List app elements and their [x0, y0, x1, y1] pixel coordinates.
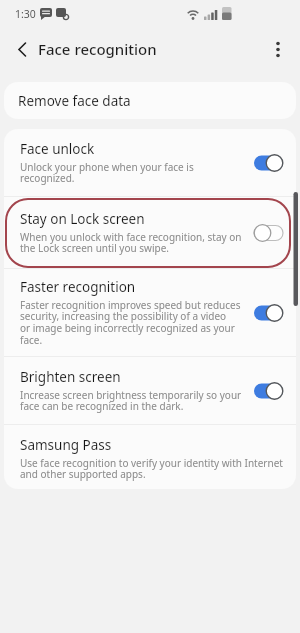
staticText: Unlock your phone when your face is reco…	[20, 160, 194, 185]
button[interactable]: Brighten screen	[4, 357, 296, 424]
staticText: Use face recognition to verify your iden…	[20, 456, 283, 481]
button[interactable]: Faster recognition	[4, 269, 296, 356]
staticText: Face unlock	[20, 140, 95, 158]
staticText: Stay on Lock screen	[20, 210, 145, 228]
button[interactable]: Face unlock	[4, 129, 296, 196]
staticText: Brighten screen	[20, 368, 121, 386]
button[interactable]: Remove face data	[4, 82, 296, 119]
staticText: Samsung Pass	[20, 436, 112, 454]
staticText: Increase screen brightness temporarily s…	[20, 388, 242, 413]
staticText: When you unlock with face recognition, s…	[20, 230, 242, 255]
button[interactable]: Samsung Pass	[4, 425, 296, 489]
staticText: Face recognition	[38, 39, 157, 59]
staticText: 1:30	[15, 7, 36, 21]
button[interactable]: Stay on Lock screen	[4, 197, 296, 268]
staticText: Faster recognition improves speed but re…	[20, 298, 241, 347]
staticText: Remove face data	[18, 92, 131, 110]
staticText: Faster recognition	[20, 278, 136, 296]
